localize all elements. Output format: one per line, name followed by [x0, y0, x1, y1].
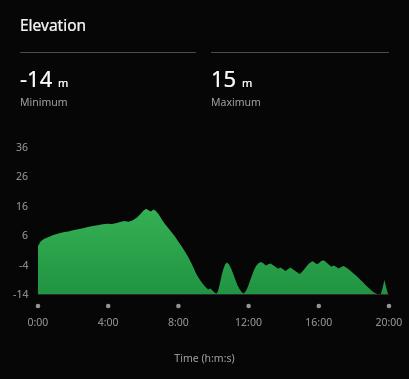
staticText: 15: [211, 63, 237, 93]
staticText: Time (h:m:s): [0, 351, 409, 365]
staticText: m: [242, 75, 253, 90]
button[interactable]: Elevation over time chart: [0, 132, 409, 332]
staticText: Elevation: [20, 14, 87, 35]
staticText: -14: [20, 63, 53, 93]
staticText: Maximum: [211, 95, 261, 109]
button[interactable]: 15: [211, 52, 389, 109]
button[interactable]: -14: [20, 52, 196, 109]
staticText: m: [58, 75, 69, 90]
staticText: Minimum: [20, 95, 68, 109]
